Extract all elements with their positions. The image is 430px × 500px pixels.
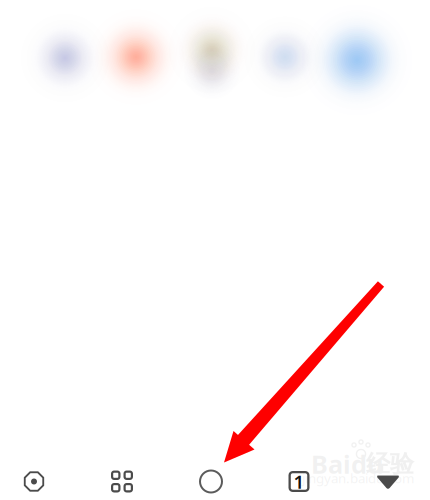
button[interactable]: Apps xyxy=(83,457,161,500)
staticText: jingyan.baidu.com xyxy=(302,469,414,487)
button[interactable]: Menu xyxy=(349,457,427,500)
staticText: Baidu xyxy=(311,447,383,481)
button[interactable]: Tabs xyxy=(260,457,338,500)
button[interactable]: Voice search xyxy=(0,457,73,500)
staticText: 经验 xyxy=(366,449,414,479)
button[interactable]: Home xyxy=(172,457,250,500)
staticText: 1 xyxy=(293,469,304,494)
